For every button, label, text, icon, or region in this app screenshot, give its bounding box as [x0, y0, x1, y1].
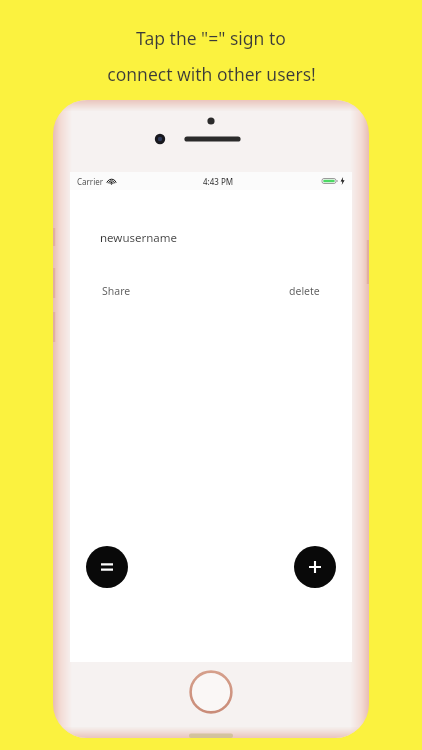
staticText: delete [289, 284, 320, 298]
staticText: connect with other users! [107, 62, 316, 86]
staticText: Tap the "=" sign to [136, 26, 286, 50]
other: Home [189, 670, 233, 714]
button[interactable]: newusername [70, 226, 352, 250]
button[interactable]: Add [294, 546, 336, 588]
button[interactable]: Share [100, 282, 133, 300]
staticText: 4:43 PM [203, 176, 234, 187]
staticText: newusername [100, 230, 178, 246]
staticText: Share [102, 284, 131, 298]
staticText: Carrier [77, 176, 104, 187]
button[interactable]: Connect [86, 546, 128, 588]
button[interactable]: delete [287, 282, 322, 300]
